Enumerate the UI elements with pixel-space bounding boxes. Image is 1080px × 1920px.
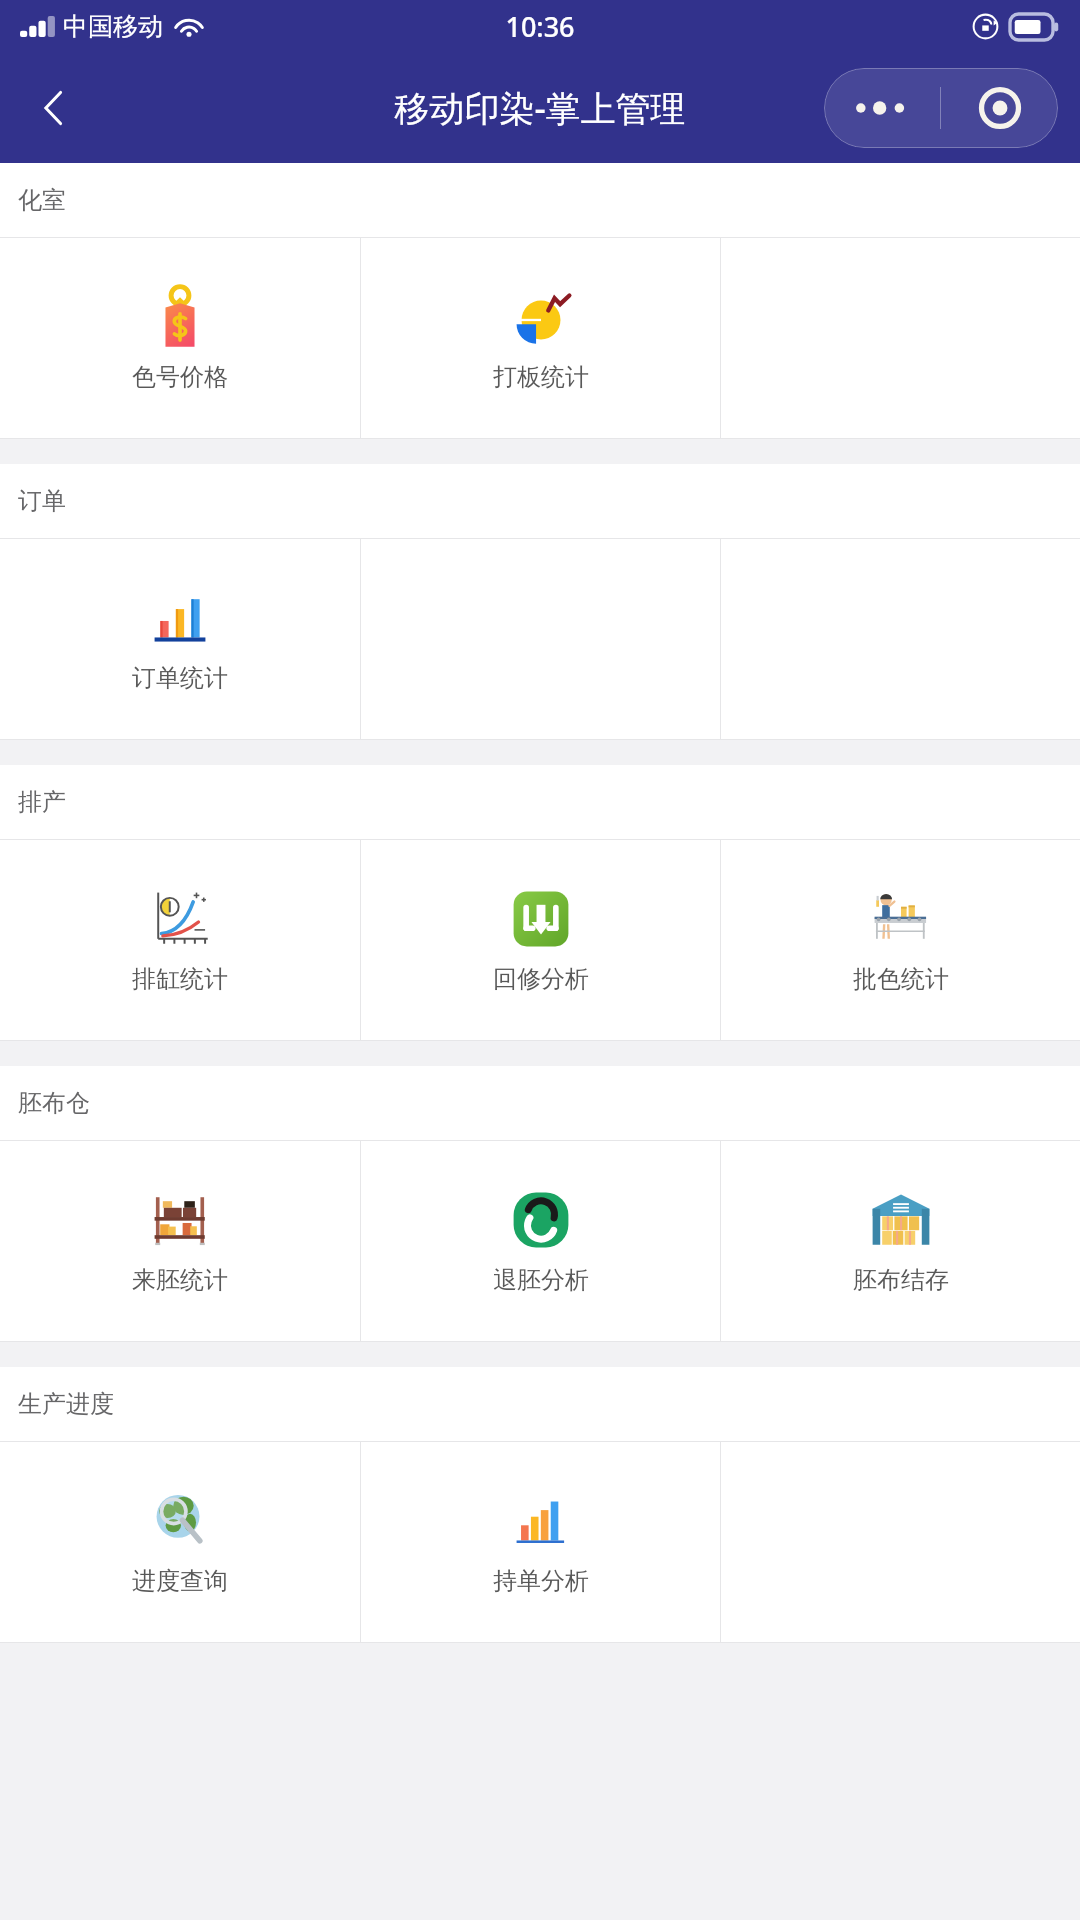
staticText: 回修分析 xyxy=(493,964,589,994)
staticText: 进度查询 xyxy=(132,1566,228,1596)
button[interactable]: 胚布结存 xyxy=(721,1141,1080,1341)
staticText: 排缸统计 xyxy=(132,964,228,994)
staticText: 化室 xyxy=(18,185,66,215)
staticText: 退胚分析 xyxy=(493,1265,589,1295)
staticText: 10:36 xyxy=(505,8,575,45)
staticText: 订单 xyxy=(18,486,66,516)
staticText: 胚布结存 xyxy=(853,1265,949,1295)
button[interactable]: 批色统计 xyxy=(721,840,1080,1040)
button[interactable]: 退胚分析 xyxy=(361,1141,720,1341)
button[interactable]: More options xyxy=(824,68,940,148)
staticText: 生产进度 xyxy=(18,1389,114,1419)
button[interactable]: 持单分析 xyxy=(361,1442,720,1642)
staticText: 来胚统计 xyxy=(132,1265,228,1295)
staticText: 中国移动 xyxy=(63,11,163,42)
staticText: 订单统计 xyxy=(132,663,228,693)
staticText: 排产 xyxy=(18,787,66,817)
staticText: 打板统计 xyxy=(493,362,589,392)
staticText: 持单分析 xyxy=(493,1566,589,1596)
button[interactable]: Back xyxy=(20,75,86,141)
button[interactable]: 订单统计 xyxy=(0,539,360,739)
button[interactable]: 打板统计 xyxy=(361,238,720,438)
button[interactable]: 排缸统计 xyxy=(0,840,360,1040)
button[interactable]: 进度查询 xyxy=(0,1442,360,1642)
button[interactable]: Mini program menu xyxy=(941,68,1058,148)
staticText: 胚布仓 xyxy=(18,1088,90,1118)
button[interactable]: 回修分析 xyxy=(361,840,720,1040)
staticText: 色号价格 xyxy=(132,362,228,392)
button[interactable]: 色号价格 xyxy=(0,238,360,438)
staticText: 批色统计 xyxy=(853,964,949,994)
staticText: 移动印染-掌上管理 xyxy=(394,84,686,132)
button[interactable]: 来胚统计 xyxy=(0,1141,360,1341)
